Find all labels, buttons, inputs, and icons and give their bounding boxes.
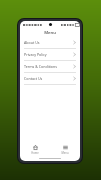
staticText: Home xyxy=(31,151,39,155)
button[interactable]: Privacy Policy xyxy=(20,49,80,60)
staticText: Terms & Conditions xyxy=(24,64,73,69)
staticText: Menu xyxy=(44,30,56,36)
button[interactable]: Home xyxy=(20,143,50,156)
button[interactable]: Menu xyxy=(50,143,80,156)
staticText: Contact Us xyxy=(24,76,73,81)
button[interactable]: Terms & Conditions xyxy=(20,61,80,72)
staticText: About Us xyxy=(24,40,73,45)
button[interactable]: Contact Us xyxy=(20,73,80,84)
button[interactable]: About Us xyxy=(20,37,80,48)
staticText: Menu xyxy=(61,151,69,155)
staticText: Privacy Policy xyxy=(24,52,73,57)
